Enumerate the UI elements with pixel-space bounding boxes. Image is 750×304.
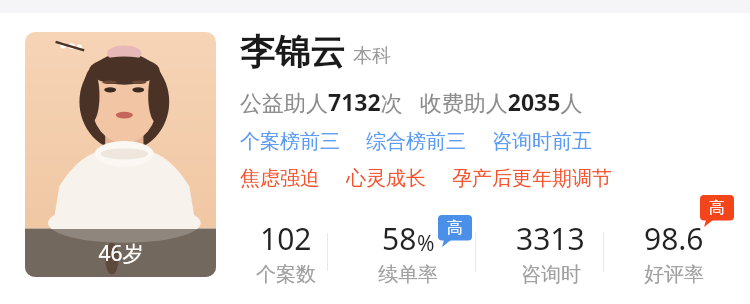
staticText: 46岁 (98, 239, 144, 268)
button[interactable]: 孕产后更年期调节 (452, 166, 612, 191)
staticText: 孕产后更年期调节 (452, 166, 612, 191)
staticText: 高 (447, 218, 463, 238)
button[interactable]: Counselor photo (25, 32, 216, 277)
staticText: 本科 (353, 44, 391, 68)
staticText: 李锦云 (240, 30, 345, 74)
button[interactable]: 咨询时前五 (492, 129, 592, 154)
staticText: 58 (382, 218, 417, 259)
staticText: 咨询时 (521, 262, 581, 287)
staticText: 焦虑强迫 (240, 166, 320, 191)
staticText: % (417, 229, 435, 258)
staticText: 高 (709, 198, 725, 218)
button[interactable]: 个案榜前三 (240, 129, 340, 154)
button[interactable]: 3313 (500, 218, 600, 300)
button[interactable]: 102 (245, 218, 327, 300)
button[interactable]: 焦虑强迫 (240, 166, 320, 191)
button[interactable]: 心灵成长 (346, 166, 426, 191)
staticText: 好评率 (644, 262, 704, 287)
staticText: 综合榜前三 (366, 129, 466, 154)
button[interactable]: 98.6 (630, 218, 718, 300)
staticText: 98.6 (644, 218, 704, 259)
button[interactable]: 综合榜前三 (366, 129, 466, 154)
staticText: 个案数 (256, 262, 316, 287)
staticText: 个案榜前三 (240, 129, 340, 154)
button[interactable]: 58 (360, 218, 456, 300)
staticText: 公益助人7132次 收费助人2035人 (240, 86, 583, 117)
staticText: 心灵成长 (346, 166, 426, 191)
staticText: 102 (260, 218, 312, 259)
staticText: 3313 (516, 218, 585, 259)
staticText: 续单率 (378, 262, 438, 287)
staticText: 咨询时前五 (492, 129, 592, 154)
